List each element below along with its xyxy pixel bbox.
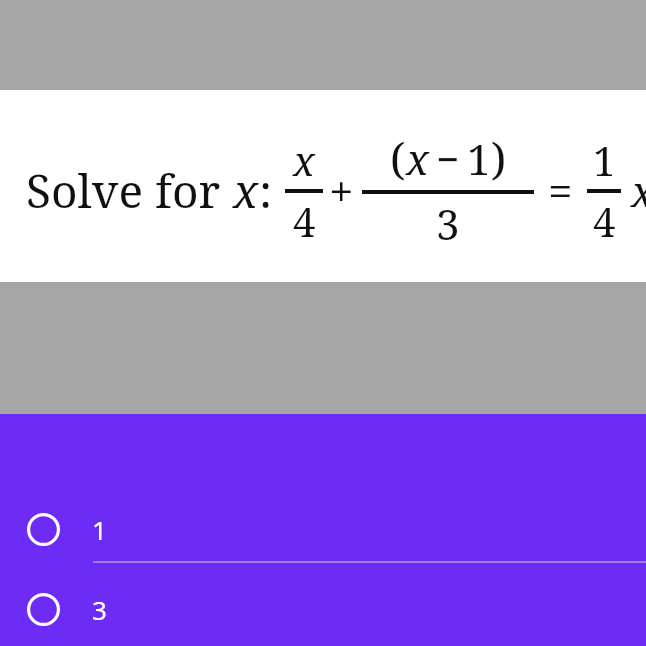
- staticText: x: [293, 133, 315, 187]
- staticText: 1: [467, 130, 491, 187]
- staticText: (: [390, 128, 406, 188]
- staticText: −: [436, 131, 460, 185]
- staticText: +: [329, 160, 354, 220]
- staticText: 3: [436, 195, 460, 252]
- staticText: 1: [92, 512, 107, 547]
- staticText: ): [491, 128, 507, 188]
- button[interactable]: 1: [0, 497, 646, 561]
- staticText: :: [259, 159, 273, 222]
- staticText: Solve for: [26, 159, 233, 222]
- staticText: 1: [593, 133, 616, 187]
- staticText: 3: [92, 592, 107, 627]
- staticText: x: [233, 159, 259, 222]
- staticText: x: [406, 130, 429, 187]
- staticText: 4: [593, 194, 616, 248]
- staticText: x: [631, 162, 646, 219]
- staticText: 4: [293, 194, 316, 248]
- staticText: =: [548, 160, 573, 220]
- button[interactable]: 3: [0, 577, 646, 641]
